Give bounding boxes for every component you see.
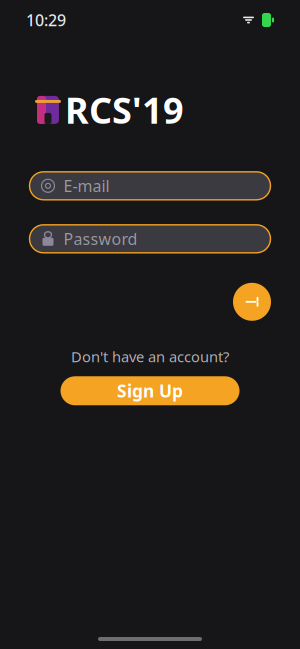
staticText: Sign Up	[117, 379, 183, 402]
staticText: Don't have an account?	[71, 347, 229, 366]
button[interactable]: Sign Up	[60, 376, 239, 405]
button[interactable]: Sign In	[233, 283, 271, 321]
staticText: Password	[63, 228, 137, 249]
button[interactable]: E-mail	[29, 172, 270, 200]
button[interactable]: Password	[29, 225, 270, 253]
staticText: 10:29	[26, 9, 66, 31]
staticText: RCS'19	[65, 86, 184, 134]
staticText: E-mail	[63, 175, 109, 196]
